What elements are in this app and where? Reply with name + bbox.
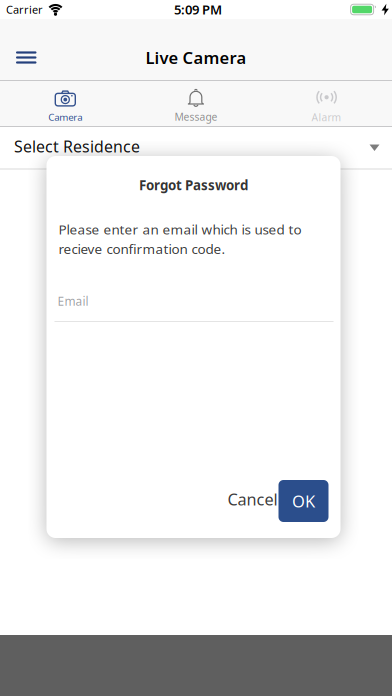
button[interactable]: Select Residence (0, 127, 392, 168)
staticText: Cancel (227, 488, 277, 510)
staticText: Forgot Password (139, 176, 248, 194)
staticText: 5:09 PM (174, 1, 222, 18)
staticText: Select Residence (14, 135, 140, 157)
button[interactable]: Alarm (261, 81, 392, 126)
button[interactable]: Menu (0, 45, 44, 70)
button[interactable]: Camera (0, 81, 131, 126)
staticText: OK (292, 490, 315, 512)
staticText: Message (174, 110, 217, 124)
button[interactable]: Cancel (224, 484, 280, 514)
staticText: Camera (48, 110, 82, 124)
staticText: Email (57, 293, 88, 309)
staticText: Carrier (6, 2, 43, 17)
staticText: recieve confirmation code. (58, 239, 225, 258)
button[interactable]: Message (131, 81, 261, 126)
staticText: Live Camera (145, 46, 246, 69)
staticText: Alarm (312, 110, 342, 124)
staticText: Please enter an email which is used to (58, 220, 301, 238)
button[interactable]: OK (278, 480, 328, 522)
